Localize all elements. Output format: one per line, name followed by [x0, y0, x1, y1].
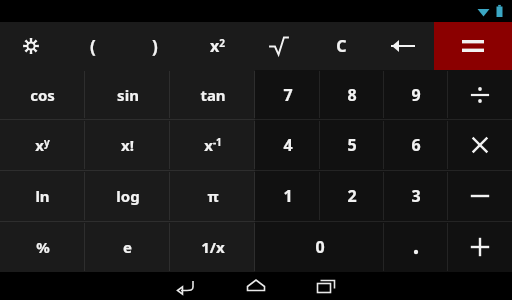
- staticText: ): [152, 35, 158, 58]
- staticText: tan: [200, 85, 226, 105]
- button[interactable]: 3: [384, 171, 448, 221]
- staticText: (: [90, 35, 96, 58]
- button[interactable]: 0: [255, 222, 384, 272]
- button[interactable]: sin: [85, 70, 170, 119]
- staticText: cos: [30, 85, 55, 105]
- button[interactable]: x!: [85, 120, 170, 170]
- staticText: x!: [121, 135, 134, 155]
- button[interactable]: 8: [320, 70, 384, 119]
- staticText: C: [336, 35, 347, 57]
- staticText: e: [123, 237, 132, 257]
- button[interactable]: Add: [448, 222, 512, 272]
- button[interactable]: ln: [0, 171, 85, 221]
- staticText: π: [207, 186, 219, 206]
- button[interactable]: xy: [0, 120, 85, 170]
- button[interactable]: x-1: [170, 120, 255, 170]
- staticText: sin: [117, 85, 139, 105]
- staticText: log: [116, 186, 140, 206]
- button[interactable]: 9: [384, 70, 448, 119]
- button[interactable]: Equals: [434, 22, 512, 70]
- button[interactable]: ): [124, 22, 186, 70]
- button[interactable]: Recent apps: [309, 272, 343, 300]
- staticText: %: [36, 237, 50, 257]
- button[interactable]: C: [310, 22, 372, 70]
- staticText: 2: [347, 185, 357, 207]
- staticText: 3: [411, 185, 421, 207]
- staticText: 8: [347, 84, 357, 106]
- button[interactable]: tan: [170, 70, 255, 119]
- button[interactable]: π: [170, 171, 255, 221]
- button[interactable]: x2: [186, 22, 248, 70]
- button[interactable]: Square root: [248, 22, 310, 70]
- staticText: 6: [411, 134, 421, 156]
- button[interactable]: 2: [320, 171, 384, 221]
- button[interactable]: Backspace: [372, 22, 434, 70]
- staticText: 7: [283, 84, 293, 106]
- staticText: 1/x: [201, 237, 225, 257]
- button[interactable]: Home: [239, 272, 273, 300]
- button[interactable]: 6: [384, 120, 448, 170]
- staticText: x2: [210, 35, 225, 57]
- staticText: 4: [283, 134, 293, 156]
- staticText: ln: [35, 186, 50, 206]
- staticText: 1: [283, 185, 293, 207]
- button[interactable]: log: [85, 171, 170, 221]
- button[interactable]: 7: [255, 70, 320, 119]
- button[interactable]: %: [0, 222, 85, 272]
- button[interactable]: cos: [0, 70, 85, 119]
- staticText: xy: [35, 135, 50, 155]
- staticText: x-1: [204, 135, 222, 155]
- button[interactable]: (: [62, 22, 124, 70]
- staticText: 5: [347, 134, 357, 156]
- button[interactable]: 4: [255, 120, 320, 170]
- button[interactable]: Decimal point: [384, 222, 448, 272]
- button[interactable]: Back: [169, 272, 203, 300]
- button[interactable]: Divide: [448, 70, 512, 119]
- button[interactable]: Settings: [0, 22, 62, 70]
- staticText: 9: [411, 84, 421, 106]
- button[interactable]: Multiply: [448, 120, 512, 170]
- button[interactable]: Subtract: [448, 171, 512, 221]
- button[interactable]: 5: [320, 120, 384, 170]
- button[interactable]: 1/x: [170, 222, 255, 272]
- staticText: 0: [315, 236, 325, 258]
- button[interactable]: e: [85, 222, 170, 272]
- button[interactable]: 1: [255, 171, 320, 221]
